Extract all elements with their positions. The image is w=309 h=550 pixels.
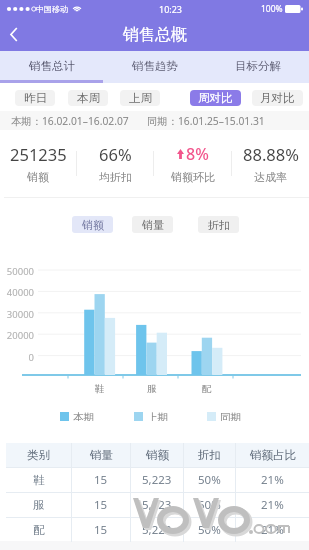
staticText: 66% (99, 143, 132, 165)
staticText: 40000 (0, 286, 34, 299)
staticText: 5,223 (142, 522, 172, 538)
staticText: 上周 (129, 91, 152, 105)
staticText: 销额占比 (250, 448, 296, 462)
staticText: 销额 (27, 170, 49, 184)
staticText: 折扣 (208, 218, 230, 232)
staticText: 销量 (90, 448, 113, 462)
staticText: 5,223 (142, 497, 172, 513)
button[interactable]: 月对比 (252, 90, 303, 106)
staticText: 销售总概 (123, 25, 187, 45)
staticText: 本周 (77, 91, 100, 105)
staticText: 21% (261, 472, 284, 488)
button[interactable]: 销量 (132, 216, 173, 233)
staticText: 达成率 (254, 170, 287, 184)
button[interactable]: Back (0, 18, 28, 51)
staticText: 上期 (147, 411, 168, 421)
staticText: 目标分解 (235, 59, 281, 73)
staticText: 服 (33, 498, 45, 512)
button[interactable]: 昨日 (15, 90, 55, 106)
button[interactable]: 周对比 (190, 90, 241, 106)
button[interactable]: 目标分解 (206, 51, 309, 83)
staticText: 同期：16.01.25–15.01.31 (147, 114, 265, 128)
staticText: 50000 (0, 265, 34, 278)
button[interactable]: 销额 (72, 216, 113, 233)
staticText: 鞋 (33, 473, 45, 487)
staticText: 5,223 (142, 472, 172, 488)
staticText: 销额 (82, 218, 104, 232)
staticText: 21% (261, 522, 284, 538)
staticText: 251235 (10, 143, 67, 165)
staticText: 配 (202, 383, 212, 395)
button[interactable]: 上周 (120, 90, 160, 106)
button[interactable]: 销售趋势 (103, 51, 206, 83)
staticText: 8% (186, 143, 209, 165)
staticText: 15 (94, 522, 108, 538)
staticText: 服 (147, 383, 157, 395)
button[interactable]: 本周 (68, 90, 108, 106)
staticText: 30000 (0, 308, 34, 321)
staticText: 本期 (73, 411, 94, 421)
staticText: 均折扣 (99, 170, 132, 184)
staticText: 月对比 (260, 91, 295, 105)
staticText: 鞋 (95, 383, 105, 395)
staticText: 配 (33, 523, 45, 537)
staticText: 15 (94, 472, 108, 488)
staticText: 88.88% (243, 143, 299, 165)
staticText: 100% (261, 3, 283, 15)
staticText: 15 (94, 497, 108, 513)
staticText: 中国移动 (36, 4, 68, 14)
staticText: 21% (261, 497, 284, 513)
staticText: 销售趋势 (132, 59, 178, 73)
staticText: 昨日 (24, 91, 47, 105)
button[interactable]: 折扣 (198, 216, 239, 233)
staticText: 10:23 (159, 3, 183, 15)
staticText: 折扣 (198, 448, 221, 462)
staticText: 销量 (142, 218, 164, 232)
staticText: 类别 (27, 448, 50, 462)
staticText: 50% (198, 497, 221, 513)
staticText: 50% (198, 472, 221, 488)
staticText: 本期：16.02.01–16.02.07 (11, 114, 129, 128)
staticText: 销额环比 (171, 170, 215, 184)
button[interactable]: 销售总计 (0, 51, 103, 83)
staticText: 50% (198, 522, 221, 538)
staticText: 0 (0, 351, 34, 364)
staticText: 20000 (0, 329, 34, 342)
staticText: 销额 (146, 448, 169, 462)
staticText: 同期 (220, 411, 241, 421)
staticText: 销售总计 (29, 59, 75, 73)
staticText: 周对比 (198, 91, 233, 105)
